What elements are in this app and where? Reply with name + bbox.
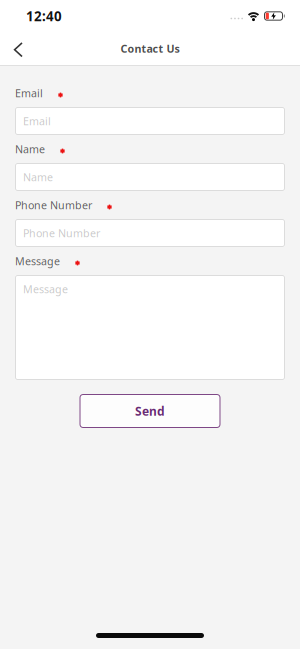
staticText: Name — [23, 170, 53, 184]
button[interactable]: Phone Number — [15, 219, 285, 247]
button[interactable]: Email — [15, 107, 285, 135]
button[interactable]: Send — [79, 394, 220, 428]
staticText: 12:40 — [26, 7, 62, 25]
staticText: Phone Number — [15, 198, 92, 212]
staticText: Contact Us — [120, 41, 179, 56]
staticText: Send — [135, 403, 165, 419]
staticText: Email — [15, 86, 43, 100]
staticText: Name — [15, 142, 45, 156]
staticText: Message — [15, 254, 60, 268]
button[interactable]: Name — [15, 163, 285, 191]
button[interactable]: Back — [0, 32, 36, 65]
staticText: Phone Number — [23, 226, 100, 240]
button[interactable]: Message — [15, 275, 285, 380]
staticText: Email — [23, 114, 51, 128]
staticText: Message — [23, 282, 68, 296]
